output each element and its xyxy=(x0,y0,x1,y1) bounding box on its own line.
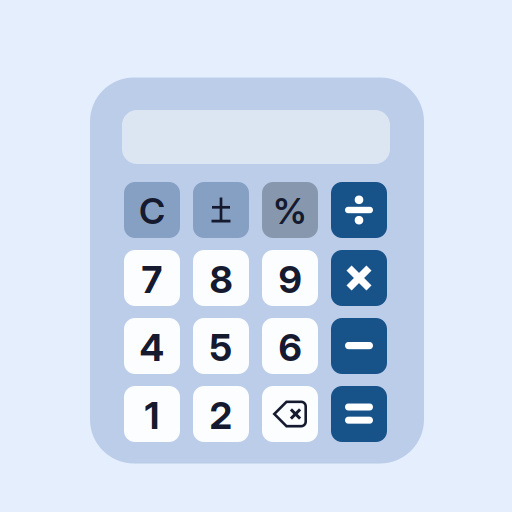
button[interactable]: Subtract xyxy=(331,318,387,374)
button[interactable]: 1 xyxy=(124,386,180,442)
staticText: 2 xyxy=(209,393,232,438)
button[interactable]: Delete xyxy=(262,386,318,442)
button[interactable]: 4 xyxy=(124,318,180,374)
staticText: % xyxy=(273,189,307,233)
button[interactable]: Equals xyxy=(331,386,387,442)
button[interactable]: Toggle sign xyxy=(193,182,249,238)
staticText: 7 xyxy=(141,257,162,302)
staticText: 6 xyxy=(278,325,301,370)
button[interactable]: Divide xyxy=(331,182,387,238)
button[interactable]: 6 xyxy=(262,318,318,374)
staticText: 8 xyxy=(209,257,232,302)
staticText: 4 xyxy=(139,325,164,370)
button[interactable]: 9 xyxy=(262,250,318,306)
staticText: C xyxy=(139,189,165,233)
button[interactable]: 5 xyxy=(193,318,249,374)
button[interactable]: 2 xyxy=(193,386,249,442)
staticText: 9 xyxy=(278,257,301,302)
button[interactable]: 8 xyxy=(193,250,249,306)
staticText: 1 xyxy=(144,393,159,438)
staticText: 5 xyxy=(209,325,232,370)
button[interactable]: % xyxy=(262,182,318,238)
button[interactable]: 7 xyxy=(124,250,180,306)
button[interactable]: Multiply xyxy=(331,250,387,306)
button[interactable]: C xyxy=(124,182,180,238)
